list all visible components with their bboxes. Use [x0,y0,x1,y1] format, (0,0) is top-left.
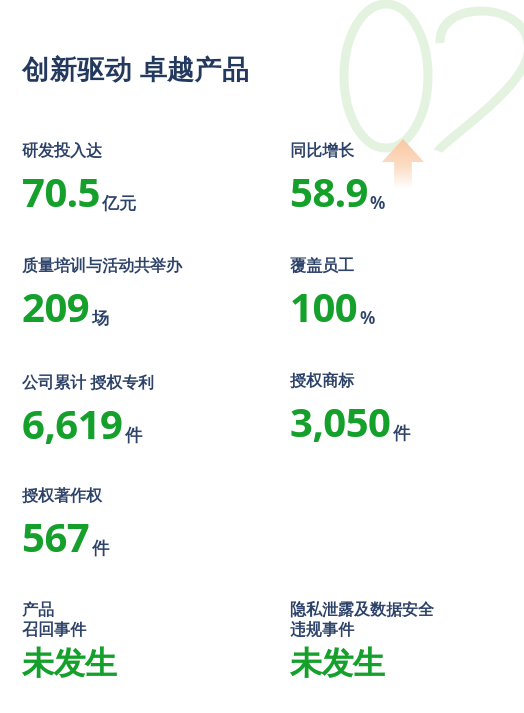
staticText: 件 [125,425,142,446]
button[interactable]: 隐私泄露及数据安全 [290,600,434,683]
staticText: 覆盖员工 [290,256,354,276]
staticText: 同比增长 [290,141,354,161]
button[interactable]: 研发投入达 [22,141,136,218]
staticText: % [360,306,376,329]
staticText: 召回事件 [22,620,86,640]
staticText: 违规事件 [290,620,354,640]
staticText: 研发投入达 [22,141,102,161]
staticText: 授权商标 [290,371,354,391]
staticText: 件 [92,538,109,559]
staticText: 567 [22,509,90,563]
staticText: % [370,191,386,214]
button[interactable]: 产品 [22,600,117,683]
staticText: 件 [393,423,410,444]
other: Growth arrow [382,139,424,189]
staticText: 公司累计 授权专利 [22,371,155,393]
staticText: 6,619 [22,396,123,450]
button[interactable]: 覆盖员工 [290,256,376,333]
staticText: 70.5 [22,164,100,218]
button[interactable]: 授权商标 [290,371,410,448]
staticText: 隐私泄露及数据安全 [290,600,434,620]
staticText: 100 [290,279,358,333]
button[interactable]: 公司累计 授权专利 [22,371,155,450]
staticText: 产品 [22,600,54,620]
button[interactable]: 同比增长 [290,141,386,218]
button[interactable]: 授权著作权 [22,486,109,563]
staticText: 209 [22,279,90,333]
staticText: 质量培训与活动共举办 [22,256,182,276]
staticText: 未发生 [290,643,385,683]
staticText: 亿元 [102,193,136,214]
staticText: 创新驱动 卓越产品 [22,50,250,87]
button[interactable]: 质量培训与活动共举办 [22,256,182,333]
staticText: 授权著作权 [22,486,102,506]
staticText: 场 [92,308,109,329]
staticText: 未发生 [22,643,117,683]
staticText: 58.9 [290,164,368,218]
staticText: 3,050 [290,394,391,448]
